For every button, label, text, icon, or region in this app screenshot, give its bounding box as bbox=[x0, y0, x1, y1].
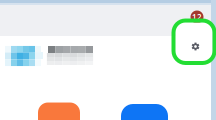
button[interactable]: Orange app bbox=[38, 102, 80, 120]
staticText: 12 bbox=[192, 12, 202, 22]
button[interactable]: Settings bbox=[175, 22, 212, 61]
button[interactable]: Blue app bbox=[121, 104, 168, 120]
